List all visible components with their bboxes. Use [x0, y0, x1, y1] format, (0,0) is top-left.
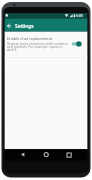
button[interactable]: [63, 150, 75, 161]
staticText: with š.: [7, 47, 17, 51]
staticText: 5:00: [76, 13, 83, 18]
button[interactable]: [5, 21, 13, 29]
staticText: Enable chat replacement: [7, 36, 53, 41]
staticText: Replace some characters with numbers: [7, 41, 68, 45]
button[interactable]: [40, 150, 52, 161]
staticText: Settings: [15, 23, 34, 30]
button[interactable]: [17, 150, 29, 161]
button[interactable]: [5, 32, 88, 57]
staticText: and symbols. For example: replace s: [7, 44, 63, 48]
